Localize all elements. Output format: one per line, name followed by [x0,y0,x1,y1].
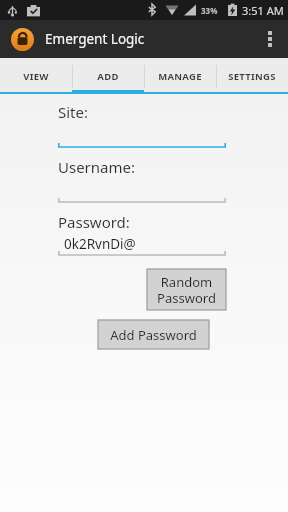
button[interactable]: MANAGE [144,58,216,94]
button[interactable] [58,126,226,151]
staticText: 0k2RvnDi@ [64,235,136,253]
staticText: 3:51 AM [242,3,284,18]
staticText: Username: [58,157,135,177]
staticText: Site: [58,102,89,122]
button[interactable]: More options [256,20,284,58]
staticText: VIEW [23,70,49,83]
staticText: MANAGE [158,70,202,83]
button[interactable]: ADD [72,58,144,94]
button[interactable]: Add Password [98,320,209,349]
staticText: SETTINGS [228,70,276,83]
staticText: Add Password [110,326,197,344]
staticText: Password: [58,212,130,232]
staticText: 33% [201,5,218,16]
staticText: ADD [97,70,119,83]
button[interactable]: 0k2RvnDi@ [58,234,226,259]
button[interactable] [58,181,226,206]
staticText: Emergent Logic Password K… [45,30,150,48]
button[interactable]: SETTINGS [216,58,288,94]
button[interactable]: Random Password [147,269,226,310]
staticText: Random Password [157,273,216,306]
button[interactable]: VIEW [0,58,72,94]
